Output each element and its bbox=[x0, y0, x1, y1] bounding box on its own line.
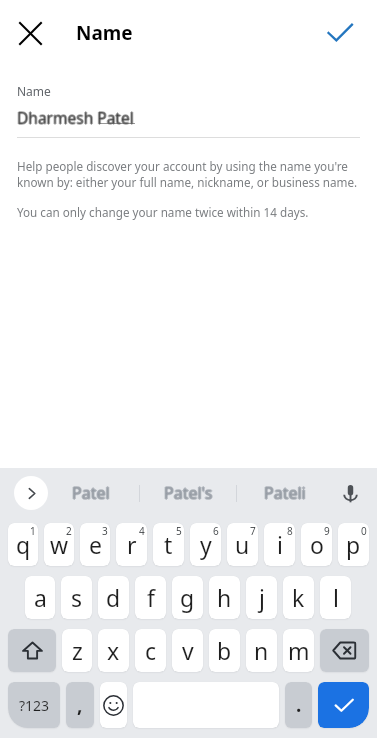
staticText: r bbox=[127, 529, 137, 560]
button[interactable]: o bbox=[301, 523, 332, 566]
button[interactable]: q bbox=[8, 523, 38, 566]
button[interactable]: a bbox=[25, 576, 55, 619]
staticText: l bbox=[333, 582, 339, 613]
button[interactable]: t bbox=[153, 523, 184, 566]
button[interactable]: c bbox=[135, 629, 166, 672]
staticText: o bbox=[310, 529, 324, 560]
staticText: 3 bbox=[102, 524, 108, 538]
staticText: k bbox=[292, 582, 305, 613]
staticText: z bbox=[72, 635, 83, 666]
button[interactable]: z bbox=[62, 629, 92, 672]
staticText: , bbox=[77, 692, 83, 718]
staticText: Dharmesh Patel bbox=[17, 106, 134, 127]
button[interactable]: Emoji bbox=[100, 682, 127, 728]
button[interactable]: j bbox=[246, 576, 277, 619]
staticText: Patel's bbox=[164, 483, 213, 505]
button[interactable]: s bbox=[61, 576, 92, 619]
staticText: c bbox=[145, 635, 157, 666]
staticText: Patel bbox=[73, 482, 111, 504]
staticText: m bbox=[288, 635, 310, 666]
staticText: Patel bbox=[71, 482, 109, 504]
staticText: You can only change your name twice with… bbox=[17, 204, 309, 220]
button[interactable]: p bbox=[338, 523, 369, 566]
button[interactable]: k bbox=[283, 576, 314, 619]
staticText: 0 bbox=[361, 524, 367, 538]
staticText: Pateli bbox=[264, 483, 306, 505]
button[interactable]: h bbox=[209, 576, 240, 619]
button[interactable]: Voice input bbox=[333, 476, 367, 510]
staticText: Patel's bbox=[163, 482, 212, 504]
staticText: Help people discover your account by usi… bbox=[17, 158, 360, 191]
staticText: p bbox=[346, 529, 361, 560]
staticText: Pateli bbox=[264, 481, 306, 503]
staticText: f bbox=[147, 582, 155, 613]
button[interactable]: Patel's bbox=[140, 468, 236, 518]
staticText: 5 bbox=[176, 524, 182, 538]
button[interactable]: ?123 bbox=[8, 682, 60, 728]
staticText: 8 bbox=[287, 524, 293, 538]
staticText: Dharmesh Patel bbox=[16, 107, 133, 128]
staticText: Patel bbox=[72, 482, 110, 504]
staticText: Pateli bbox=[263, 482, 305, 504]
staticText: Pateli bbox=[265, 482, 307, 504]
staticText: ?123 bbox=[19, 696, 50, 715]
staticText: e bbox=[89, 529, 102, 560]
staticText: Name bbox=[76, 20, 133, 46]
button[interactable]: Shift bbox=[8, 629, 56, 672]
staticText: y bbox=[200, 529, 212, 560]
staticText: Patel's bbox=[164, 481, 213, 503]
button[interactable]: f bbox=[135, 576, 166, 619]
button[interactable]: . bbox=[285, 682, 312, 728]
button[interactable]: Pateli bbox=[237, 468, 333, 518]
button[interactable]: g bbox=[172, 576, 203, 619]
button[interactable]: y bbox=[190, 523, 221, 566]
staticText: 4 bbox=[139, 524, 145, 538]
staticText: Name bbox=[17, 83, 51, 99]
staticText: 7 bbox=[250, 524, 256, 538]
staticText: Pateli bbox=[264, 482, 306, 504]
button[interactable]: r bbox=[116, 523, 147, 566]
staticText: n bbox=[254, 635, 269, 666]
button[interactable]: b bbox=[209, 629, 240, 672]
staticText: a bbox=[34, 582, 47, 613]
staticText: t bbox=[164, 529, 173, 560]
button[interactable]: e bbox=[80, 523, 110, 566]
staticText: . bbox=[296, 692, 302, 718]
staticText: d bbox=[106, 582, 121, 613]
button[interactable]: x bbox=[98, 629, 129, 672]
staticText: Dharmesh Patel bbox=[17, 107, 134, 128]
staticText: 6 bbox=[213, 524, 219, 538]
staticText: s bbox=[71, 582, 83, 613]
button[interactable]: Close bbox=[6, 9, 54, 57]
staticText: g bbox=[180, 582, 195, 613]
button[interactable]: v bbox=[172, 629, 203, 672]
staticText: Dharmesh Patel bbox=[17, 108, 134, 129]
staticText: h bbox=[217, 582, 232, 613]
staticText: w bbox=[50, 529, 69, 560]
staticText: Patel's bbox=[164, 482, 213, 504]
staticText: 1 bbox=[30, 524, 36, 538]
staticText: Patel bbox=[72, 481, 110, 503]
button[interactable]: n bbox=[246, 629, 277, 672]
staticText: i bbox=[277, 529, 283, 560]
button[interactable]: u bbox=[227, 523, 258, 566]
button[interactable]: , bbox=[66, 682, 94, 728]
button[interactable]: Backspace bbox=[320, 629, 369, 672]
button[interactable]: Enter bbox=[318, 682, 369, 728]
staticText: Dharmesh Patel bbox=[18, 107, 135, 128]
button[interactable]: i bbox=[264, 523, 295, 566]
button[interactable]: Patel bbox=[43, 468, 139, 518]
button[interactable]: l bbox=[320, 576, 351, 619]
staticText: Patel bbox=[72, 483, 110, 505]
button[interactable]: More suggestions bbox=[14, 476, 48, 510]
staticText: v bbox=[182, 635, 194, 666]
button[interactable]: w bbox=[44, 523, 74, 566]
button[interactable]: d bbox=[98, 576, 129, 619]
staticText: x bbox=[107, 635, 120, 666]
button[interactable]: m bbox=[283, 629, 314, 672]
button[interactable]: Save bbox=[316, 9, 364, 57]
staticText: Patel's bbox=[165, 482, 214, 504]
staticText: q bbox=[16, 529, 31, 560]
staticText: j bbox=[259, 582, 265, 613]
